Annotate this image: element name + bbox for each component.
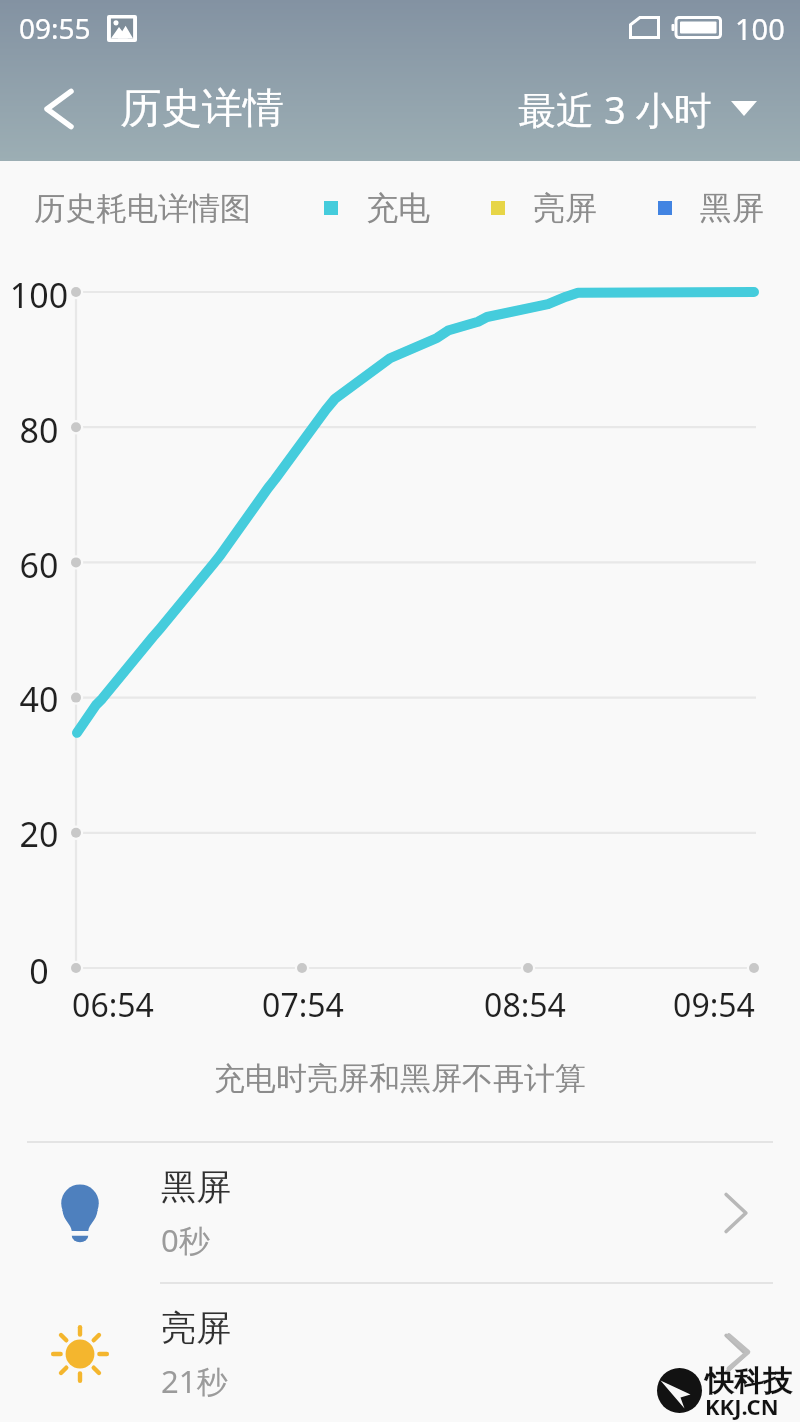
staticText: 最近 3 小时 <box>518 83 712 135</box>
staticText: 07:54 <box>203 983 403 1027</box>
staticText: 0 <box>0 948 78 994</box>
staticText: 亮屏 <box>533 188 597 228</box>
staticText: 充电 <box>366 188 430 228</box>
staticText: 08:54 <box>425 983 625 1027</box>
staticText: 100 <box>0 272 78 318</box>
button[interactable]: 黑屏 <box>0 1143 800 1282</box>
staticText: 06:54 <box>13 983 213 1027</box>
staticText: 黑屏 <box>700 188 764 228</box>
staticText: 历史详情 <box>120 83 284 135</box>
staticText: 充电时亮屏和黑屏不再计算 <box>214 1059 586 1098</box>
staticText: 0秒 <box>161 1219 210 1261</box>
button[interactable]: 亮屏 <box>0 1284 800 1422</box>
button[interactable]: 最近 3 小时 <box>518 56 777 161</box>
staticText: 80 <box>0 407 78 453</box>
staticText: 黑屏 <box>161 1165 231 1209</box>
staticText: 快科技 <box>705 1363 792 1400</box>
staticText: 亮屏 <box>161 1306 231 1350</box>
staticText: 21秒 <box>161 1360 228 1402</box>
staticText: 100 <box>735 9 785 48</box>
staticText: 历史耗电详情图 <box>34 189 251 228</box>
staticText: KKJ.CN <box>705 1391 779 1421</box>
staticText: 09:54 <box>614 983 800 1027</box>
button[interactable]: Back <box>0 56 110 161</box>
staticText: 20 <box>0 811 78 857</box>
staticText: 40 <box>0 676 78 722</box>
staticText: 60 <box>0 542 78 588</box>
staticText: 09:55 <box>19 9 91 47</box>
